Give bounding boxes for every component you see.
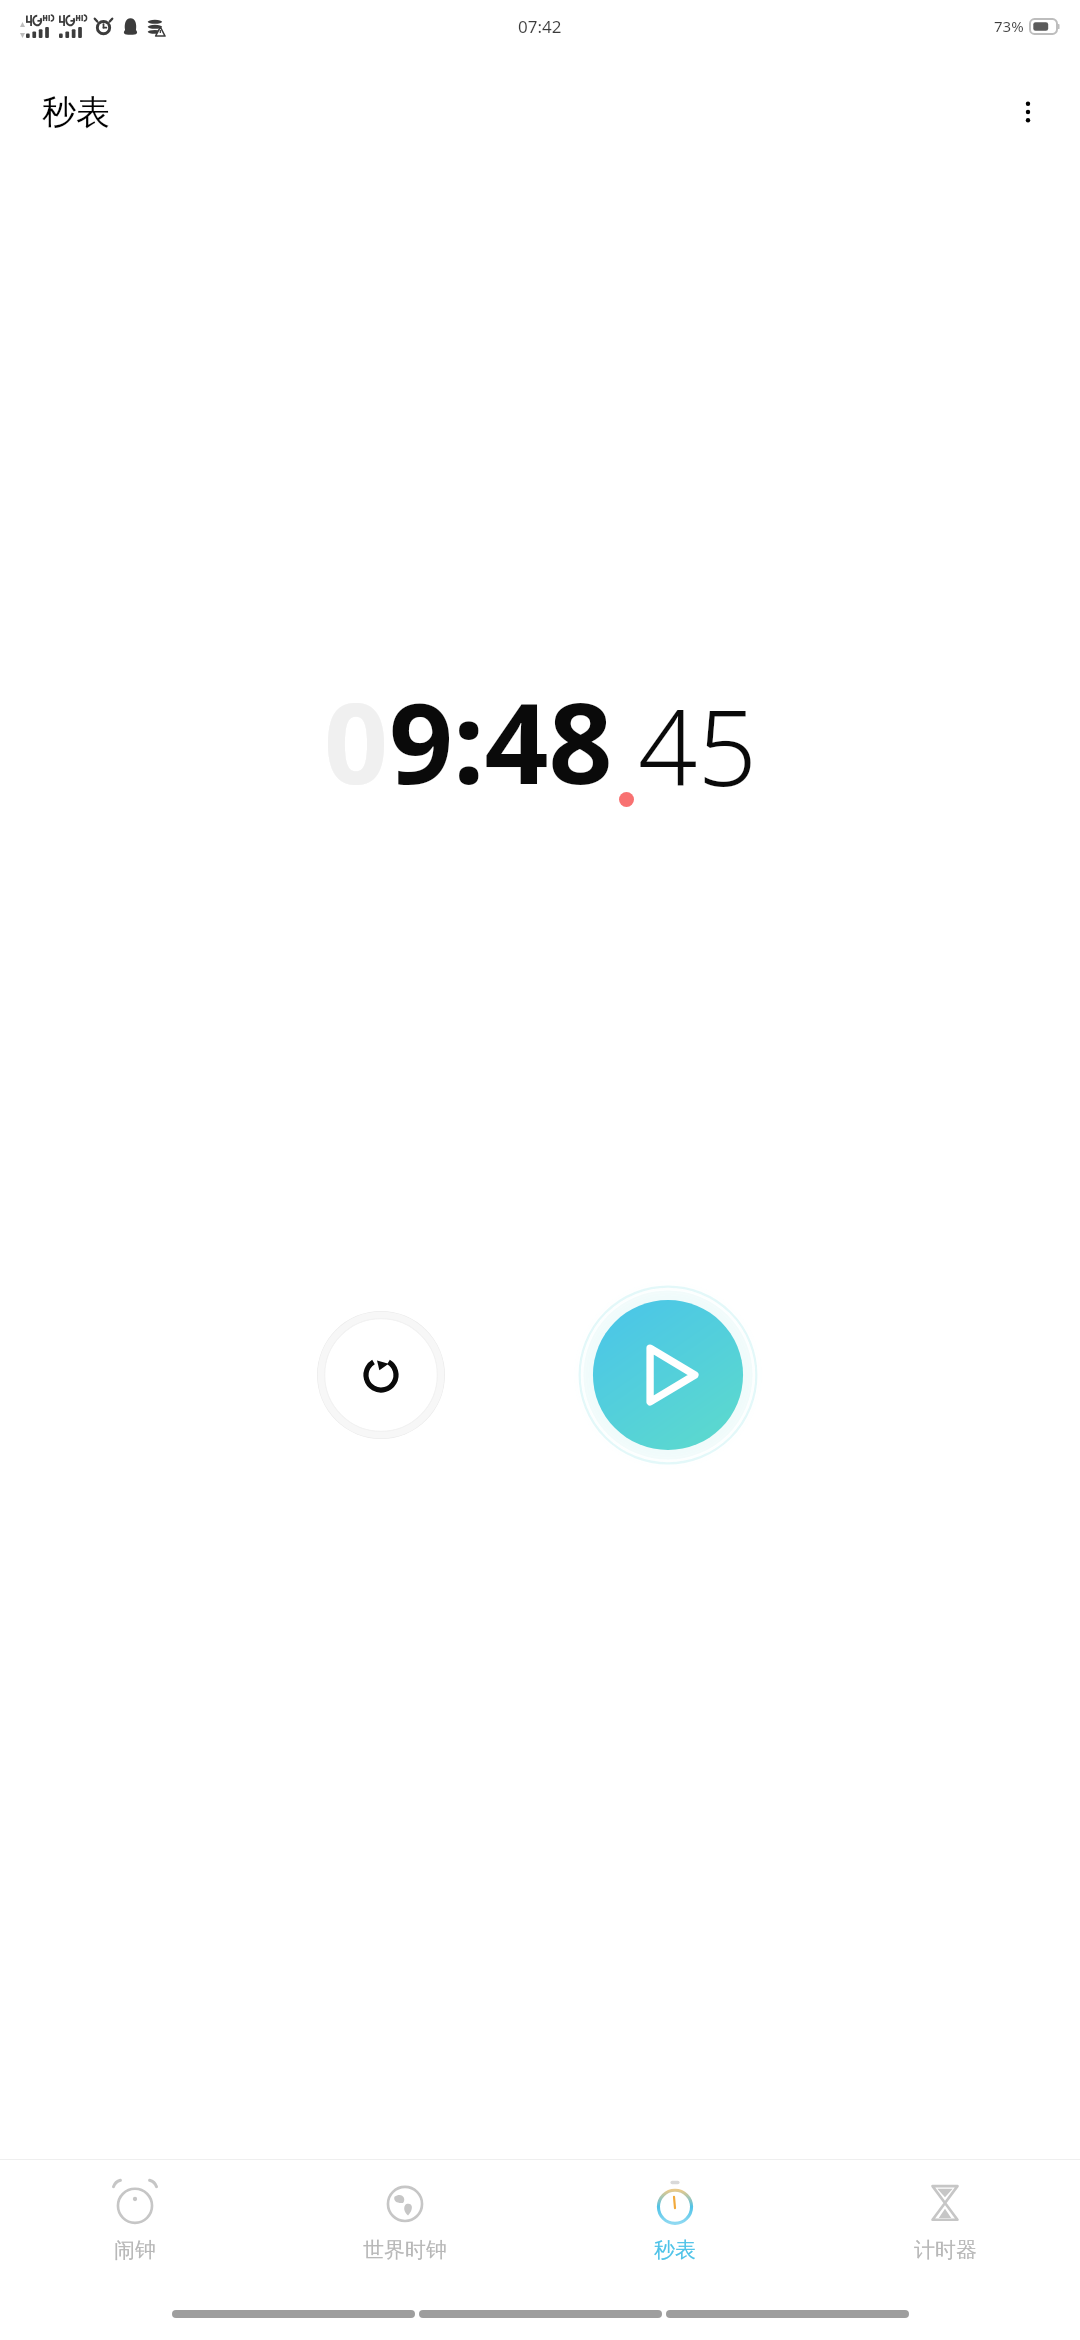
staticText: 9:48 bbox=[389, 664, 613, 817]
staticText: 07:42 bbox=[518, 15, 562, 38]
staticText: 闹钟 bbox=[114, 2237, 156, 2263]
staticText: 73% bbox=[994, 16, 1024, 36]
button[interactable]: 闹钟 bbox=[0, 2160, 270, 2263]
staticText: 秒表 bbox=[654, 2237, 696, 2263]
button[interactable]: Start bbox=[573, 1280, 763, 1470]
staticText: 世界时钟 bbox=[363, 2237, 447, 2263]
button[interactable]: Reset bbox=[317, 1311, 445, 1439]
button[interactable]: More options bbox=[1000, 84, 1056, 140]
staticText: 计时器 bbox=[914, 2237, 977, 2263]
button[interactable]: 世界时钟 bbox=[270, 2160, 540, 2263]
button[interactable]: 计时器 bbox=[810, 2160, 1080, 2263]
staticText: 45 bbox=[638, 675, 757, 817]
staticText: 0 bbox=[324, 664, 389, 817]
button[interactable]: 秒表 bbox=[540, 2160, 810, 2263]
staticText: 秒表 bbox=[42, 91, 110, 134]
